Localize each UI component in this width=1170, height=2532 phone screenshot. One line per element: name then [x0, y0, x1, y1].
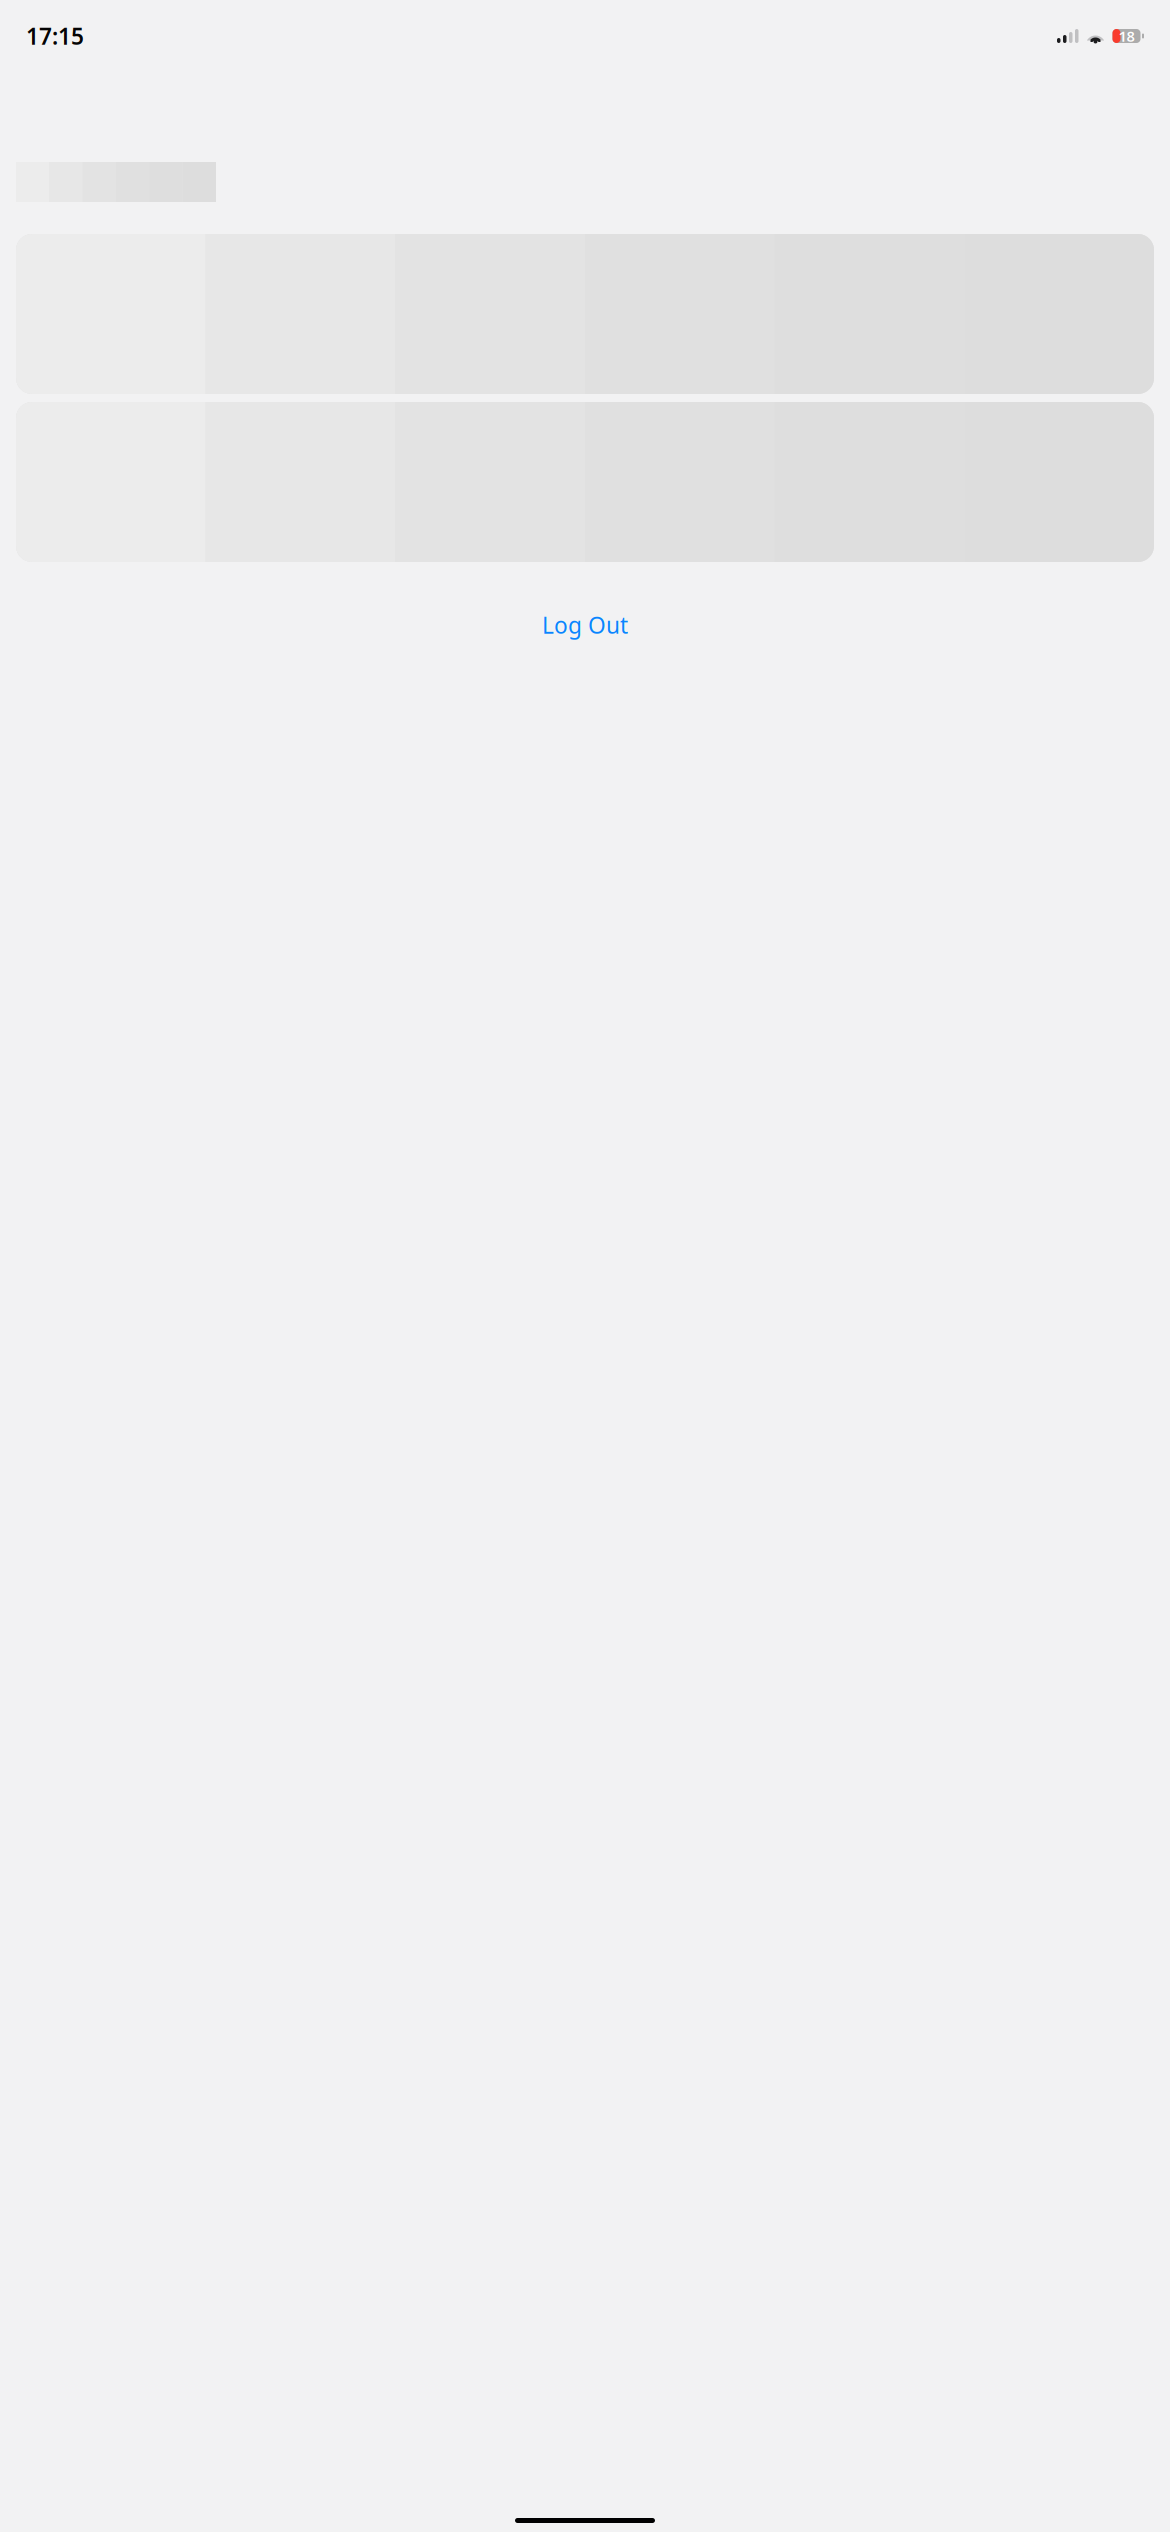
staticText: 17:15 [26, 21, 84, 51]
button[interactable]: Log Out [0, 600, 1170, 650]
staticText: 18 [1118, 26, 1134, 46]
staticText: Log Out [542, 610, 628, 640]
